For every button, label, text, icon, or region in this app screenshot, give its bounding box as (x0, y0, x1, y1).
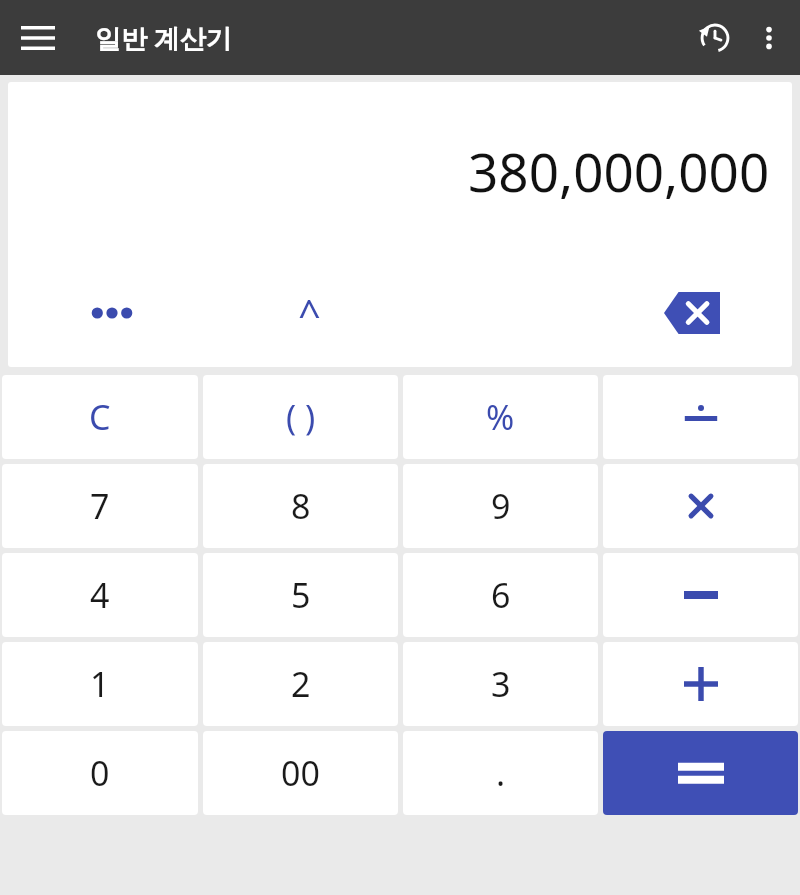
staticText: 380,000,000 (468, 135, 770, 207)
button[interactable]: Menu (10, 10, 66, 66)
staticText: 8 (291, 483, 311, 529)
staticText: 일반 계산기 (95, 20, 232, 56)
staticText: C (89, 394, 111, 440)
button[interactable]: More options (744, 13, 794, 63)
button[interactable]: 1 (2, 642, 198, 726)
staticText: 4 (90, 572, 110, 618)
button[interactable]: % (403, 375, 598, 459)
button[interactable]: ^ (263, 278, 355, 348)
staticText: % (486, 394, 515, 440)
button[interactable]: 5 (203, 553, 398, 637)
button[interactable]: 7 (2, 464, 198, 548)
button[interactable]: 3 (403, 642, 598, 726)
staticText: 0 (90, 750, 110, 796)
button[interactable]: 8 (203, 464, 398, 548)
staticText: . (496, 750, 506, 796)
staticText: ( ) (286, 394, 316, 440)
button[interactable]: 4 (2, 553, 198, 637)
button[interactable]: C (2, 375, 198, 459)
button[interactable]: Multiply (603, 464, 798, 548)
button[interactable]: 00 (203, 731, 398, 815)
staticText: 7 (90, 483, 110, 529)
staticText: 3 (491, 661, 511, 707)
button[interactable]: 6 (403, 553, 598, 637)
button[interactable]: Divide (603, 375, 798, 459)
button[interactable]: . (403, 731, 598, 815)
button[interactable]: 9 (403, 464, 598, 548)
button[interactable]: Equals (603, 731, 798, 815)
staticText: 00 (281, 750, 320, 796)
button[interactable]: 0 (2, 731, 198, 815)
staticText: 1 (90, 661, 110, 707)
staticText: 6 (491, 572, 511, 618)
staticText: ^ (298, 286, 321, 340)
staticText: 2 (291, 661, 311, 707)
staticText: 5 (291, 572, 311, 618)
button[interactable]: ( ) (203, 375, 398, 459)
button[interactable]: Plus (603, 642, 798, 726)
staticText: 9 (491, 483, 511, 529)
button[interactable]: History (686, 9, 744, 67)
button[interactable]: Minus (603, 553, 798, 637)
button[interactable]: 2 (203, 642, 398, 726)
button[interactable]: Backspace (648, 278, 736, 348)
button[interactable]: More functions (66, 278, 158, 348)
